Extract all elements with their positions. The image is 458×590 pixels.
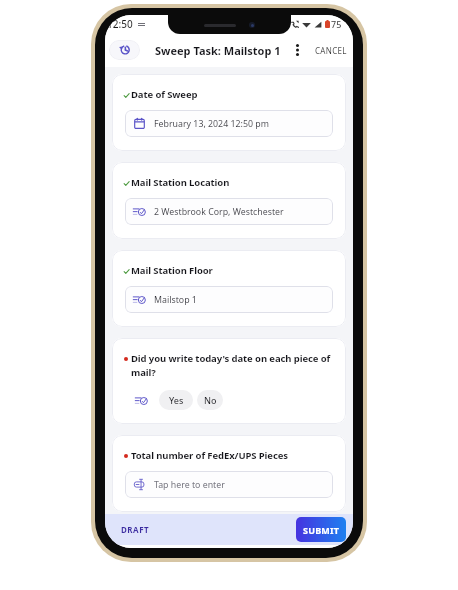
- button[interactable]: Mail Station Floor: [112, 250, 346, 327]
- staticText: Sweep Task: Mailstop 1: [155, 43, 281, 58]
- staticText: February 13, 2024 12:50 pm: [154, 118, 269, 130]
- staticText: 75: [331, 18, 342, 30]
- staticText: DRAFT: [121, 524, 150, 535]
- button[interactable]: No: [197, 390, 223, 410]
- button[interactable]: Date of Sweep: [112, 74, 346, 151]
- staticText: Tap here to enter: [154, 479, 225, 491]
- staticText: No: [204, 394, 217, 406]
- staticText: Did you write today's date on each piece…: [131, 352, 337, 379]
- button[interactable]: SUBMIT: [296, 517, 346, 542]
- button[interactable]: History: [109, 40, 140, 60]
- staticText: Yes: [169, 394, 184, 406]
- button[interactable]: CANCEL: [313, 40, 349, 61]
- button[interactable]: Mailstop 1: [125, 286, 333, 313]
- staticText: Mailstop 1: [154, 294, 197, 306]
- staticText: Mail Station Floor: [131, 264, 213, 277]
- button[interactable]: Total number of FedEx/UPS Pieces: [112, 435, 346, 512]
- staticText: Date of Sweep: [131, 88, 198, 101]
- button[interactable]: More options: [290, 37, 304, 63]
- staticText: CANCEL: [315, 45, 347, 56]
- staticText: Mail Station Location: [131, 176, 230, 189]
- staticText: 2 Westbrook Corp, Westchester: [154, 206, 284, 218]
- button[interactable]: Mail Station Location: [112, 162, 346, 239]
- button[interactable]: DRAFT: [118, 520, 153, 539]
- staticText: 12:50: [107, 17, 133, 31]
- button[interactable]: Yes: [159, 390, 193, 410]
- staticText: Total number of FedEx/UPS Pieces: [131, 449, 288, 462]
- button[interactable]: Tap here to enter: [125, 471, 333, 498]
- staticText: SUBMIT: [303, 524, 340, 536]
- button[interactable]: Did you write today's date on each piece…: [112, 338, 346, 424]
- button[interactable]: 2 Westbrook Corp, Westchester: [125, 198, 333, 225]
- button[interactable]: February 13, 2024 12:50 pm: [125, 110, 333, 137]
